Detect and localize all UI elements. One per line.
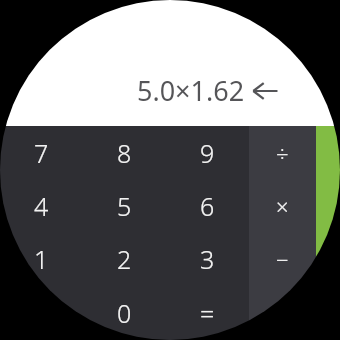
staticText: 1: [34, 242, 49, 276]
staticText: 0: [117, 296, 132, 330]
button[interactable]: 0: [83, 286, 166, 340]
staticText: +: [276, 298, 289, 328]
button[interactable]: Equals: [316, 126, 340, 340]
staticText: 8: [117, 136, 132, 170]
staticText: 5.0×1.62: [137, 72, 245, 109]
staticText: 2: [117, 242, 132, 276]
staticText: −: [276, 244, 289, 274]
button[interactable]: 7: [0, 126, 83, 179]
staticText: 7: [34, 136, 49, 170]
staticText: 9: [200, 136, 215, 170]
button[interactable]: −: [249, 232, 316, 286]
button[interactable]: 5: [83, 179, 166, 232]
button[interactable]: ÷: [249, 126, 316, 179]
button[interactable]: 9: [166, 126, 249, 179]
staticText: ÷: [276, 138, 289, 168]
staticText: =: [200, 296, 215, 330]
button[interactable]: +: [249, 286, 316, 340]
staticText: ×: [276, 191, 289, 221]
staticText: 6: [200, 189, 215, 223]
staticText: 3: [200, 242, 215, 276]
staticText: 5: [117, 189, 132, 223]
button[interactable]: .: [0, 286, 83, 340]
button[interactable]: 3: [166, 232, 249, 286]
button[interactable]: 1: [0, 232, 83, 286]
staticText: 4: [34, 189, 49, 223]
button[interactable]: Backspace: [252, 78, 278, 104]
button[interactable]: =: [166, 286, 249, 340]
button[interactable]: 5.0×1.62: [0, 0, 340, 126]
button[interactable]: 6: [166, 179, 249, 232]
button[interactable]: ×: [249, 179, 316, 232]
button[interactable]: 2: [83, 232, 166, 286]
button[interactable]: 8: [83, 126, 166, 179]
button[interactable]: 4: [0, 179, 83, 232]
